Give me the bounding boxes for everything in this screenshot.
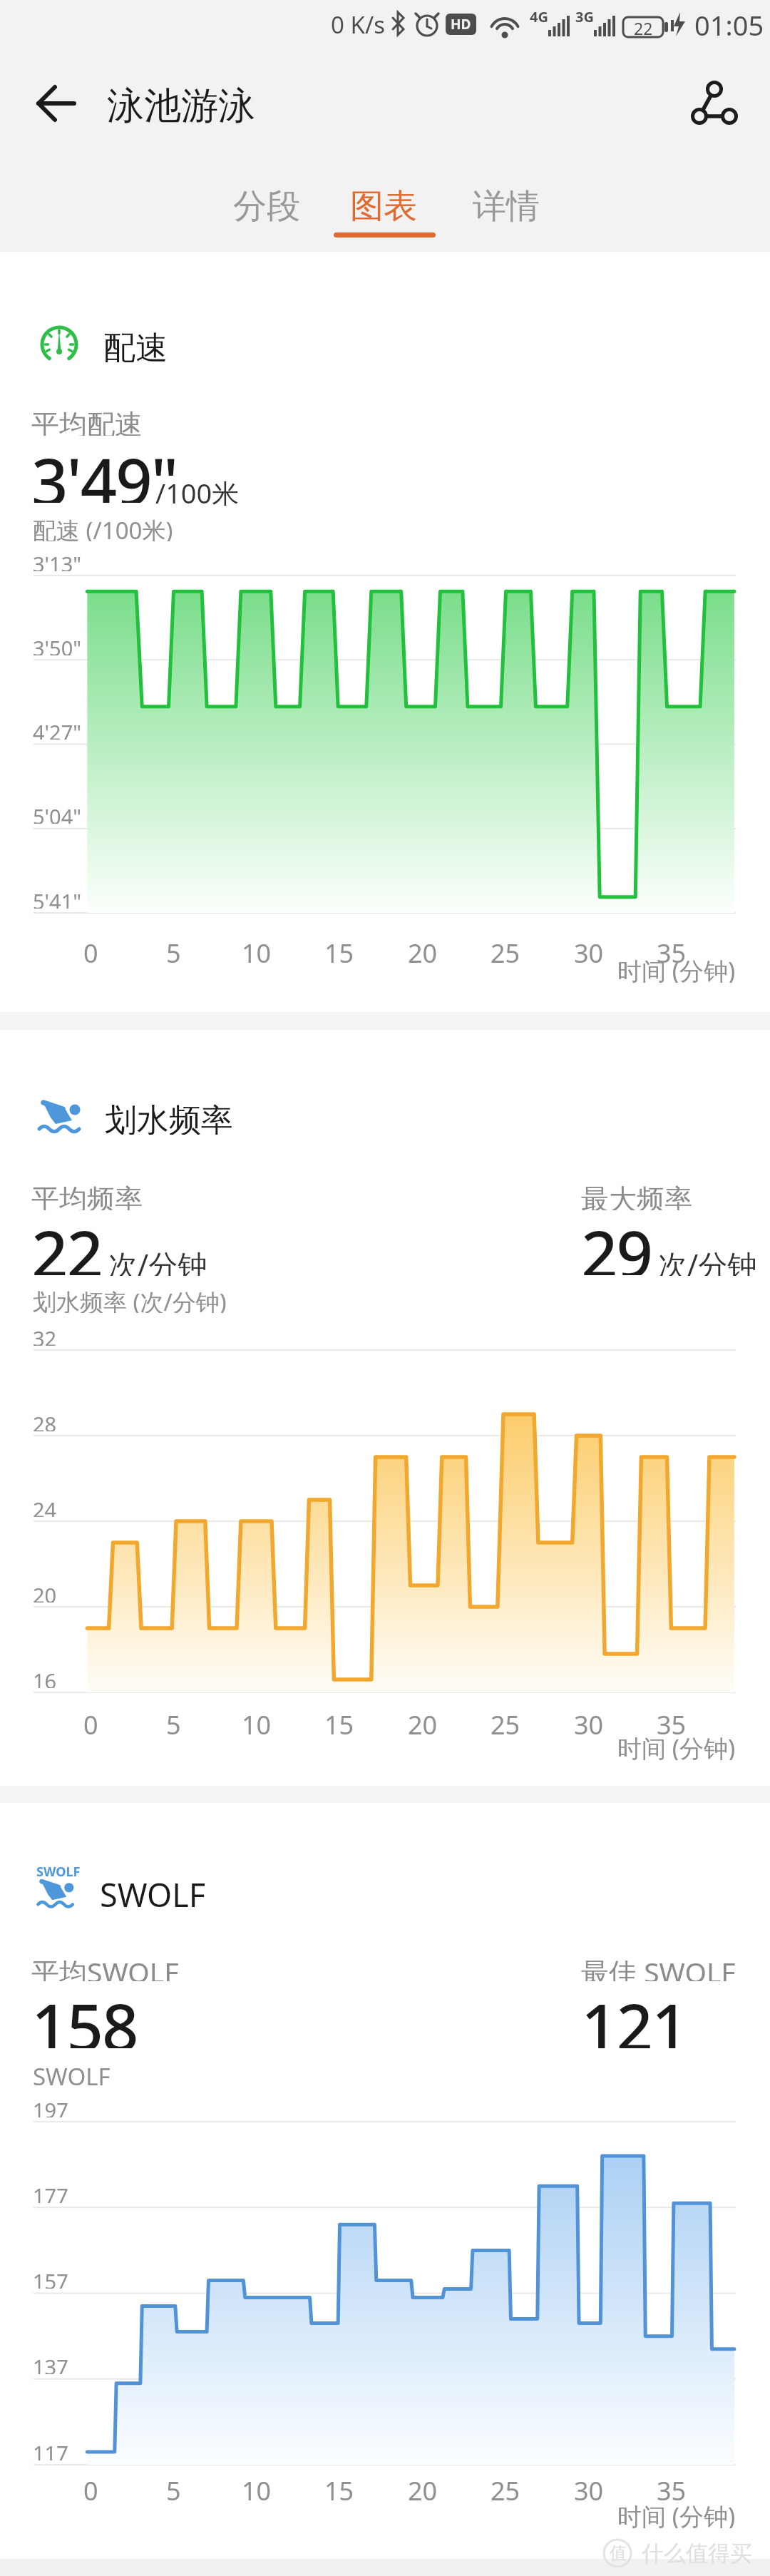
staticText: 32 — [33, 1324, 57, 1346]
staticText: 20 — [33, 1581, 57, 1603]
staticText: 0 — [83, 936, 98, 964]
button[interactable]: 图表 — [329, 170, 438, 242]
staticText: 30 — [574, 936, 604, 964]
staticText: 0 K/s — [331, 9, 385, 36]
button[interactable]: 详情 — [452, 170, 560, 242]
staticText: 22 — [634, 17, 653, 37]
staticText: 10 — [242, 1707, 272, 1736]
staticText: 详情 — [473, 185, 540, 228]
staticText: 次/分钟 — [108, 1244, 207, 1276]
staticText: 5'41" — [33, 887, 82, 909]
staticText: 16 — [33, 1667, 57, 1688]
staticText: 3'49" — [31, 437, 178, 503]
staticText: 平均SWOLF — [31, 1953, 179, 1981]
staticText: SWOLF — [33, 2060, 111, 2087]
staticText: 配速 — [103, 328, 168, 362]
staticText: 5 — [166, 1707, 181, 1736]
button[interactable] — [29, 80, 83, 127]
staticText: 137 — [33, 2353, 68, 2374]
staticText: 划水频率 — [105, 1100, 233, 1135]
staticText: 28 — [33, 1410, 57, 1431]
staticText: 35 — [657, 936, 687, 964]
staticText: 117 — [33, 2439, 68, 2460]
staticText: 15 — [324, 1707, 354, 1736]
staticText: 30 — [574, 1707, 604, 1736]
staticText: 5 — [166, 936, 181, 964]
staticText: 图表 — [350, 185, 417, 228]
staticText: 配速 (/100米) — [33, 514, 173, 541]
staticText: HD — [451, 15, 471, 34]
staticText: 最大频率 — [581, 1182, 692, 1210]
staticText: /100米 — [155, 474, 240, 506]
staticText: 0 — [83, 2473, 98, 2502]
staticText: 25 — [491, 1707, 520, 1736]
staticText: 3G — [575, 7, 594, 24]
button[interactable]: 分段 — [212, 170, 321, 242]
staticText: 泳池游泳 — [107, 83, 255, 126]
staticText: SWOLF — [100, 1873, 206, 1907]
staticText: 121 — [581, 1983, 687, 2048]
staticText: 35 — [657, 2473, 687, 2502]
staticText: 29 — [581, 1210, 652, 1275]
staticText: 次/分钟 — [658, 1244, 757, 1276]
staticText: 平均配速 — [31, 407, 143, 436]
staticText: 15 — [324, 2473, 354, 2502]
staticText: 20 — [408, 936, 438, 964]
staticText: 时间 (分钟) — [617, 954, 736, 983]
staticText: 25 — [491, 936, 520, 964]
staticText: 时间 (分钟) — [617, 2500, 736, 2528]
staticText: 10 — [242, 2473, 272, 2502]
staticText: 158 — [31, 1983, 138, 2048]
staticText: 4'27" — [33, 718, 82, 740]
staticText: 5 — [166, 2473, 181, 2502]
staticText: 22 — [31, 1210, 102, 1275]
staticText: 177 — [33, 2182, 68, 2203]
staticText: 15 — [324, 936, 354, 964]
staticText: 20 — [408, 2473, 438, 2502]
staticText: 25 — [491, 2473, 520, 2502]
staticText: 4G — [530, 7, 548, 24]
staticText: 10 — [242, 936, 272, 964]
staticText: 5'04" — [33, 802, 82, 824]
staticText: 30 — [574, 2473, 604, 2502]
staticText: 什么值得买 — [642, 2540, 752, 2567]
staticText: 24 — [33, 1496, 57, 1517]
staticText: 最佳 SWOLF — [581, 1953, 736, 1981]
staticText: 分段 — [233, 185, 300, 228]
staticText: 3'50" — [33, 634, 82, 655]
staticText: 20 — [408, 1707, 438, 1736]
staticText: 35 — [657, 1707, 687, 1736]
staticText: 划水频率 (次/分钟) — [33, 1286, 227, 1313]
staticText: SWOLF — [36, 1863, 81, 1879]
staticText: 01:05 — [694, 6, 764, 38]
staticText: 197 — [33, 2096, 68, 2117]
staticText: 157 — [33, 2267, 68, 2289]
staticText: 平均频率 — [31, 1182, 143, 1210]
staticText: 值 — [610, 2542, 627, 2564]
staticText: 3'13" — [33, 550, 82, 571]
button[interactable] — [682, 71, 746, 135]
staticText: 时间 (分钟) — [617, 1732, 736, 1760]
staticText: 0 — [83, 1707, 98, 1736]
